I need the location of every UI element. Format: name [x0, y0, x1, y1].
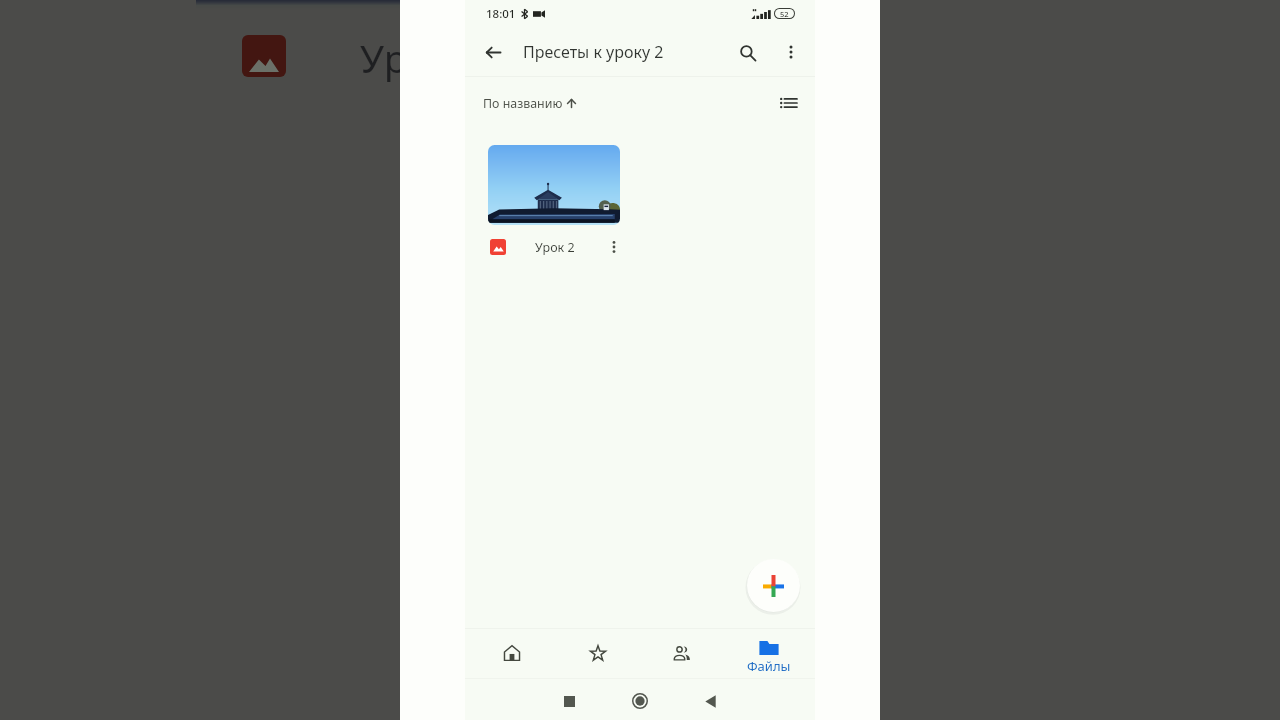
staticText: Пресеты к уроку 2	[523, 41, 664, 63]
button[interactable]: Помеченные	[572, 628, 624, 678]
button[interactable]: Главный экран	[621, 682, 659, 720]
button[interactable]	[488, 145, 620, 225]
button[interactable]: Создать	[747, 559, 800, 612]
button[interactable]: Назад	[691, 682, 729, 720]
staticText: 18:01	[486, 6, 516, 22]
button[interactable]: Урок 2	[488, 237, 620, 257]
button[interactable]: Вид списком	[773, 88, 803, 118]
staticText: Урок 2	[535, 239, 575, 256]
staticText: 52	[780, 9, 789, 18]
button[interactable]: Доступные мне	[656, 628, 708, 678]
button[interactable]: Поиск	[726, 30, 770, 74]
staticText: По названию	[483, 95, 563, 112]
button[interactable]: Ещё	[770, 31, 812, 73]
button[interactable]: Ещё	[605, 237, 623, 257]
button[interactable]: Обзор	[550, 682, 588, 720]
button[interactable]: Назад	[471, 30, 515, 74]
button[interactable]: Главная	[486, 628, 538, 678]
staticText: Файлы	[747, 657, 791, 675]
button[interactable]: Файлы	[743, 628, 795, 678]
staticText: Ур	[360, 31, 408, 84]
button[interactable]: По названию	[479, 89, 581, 118]
